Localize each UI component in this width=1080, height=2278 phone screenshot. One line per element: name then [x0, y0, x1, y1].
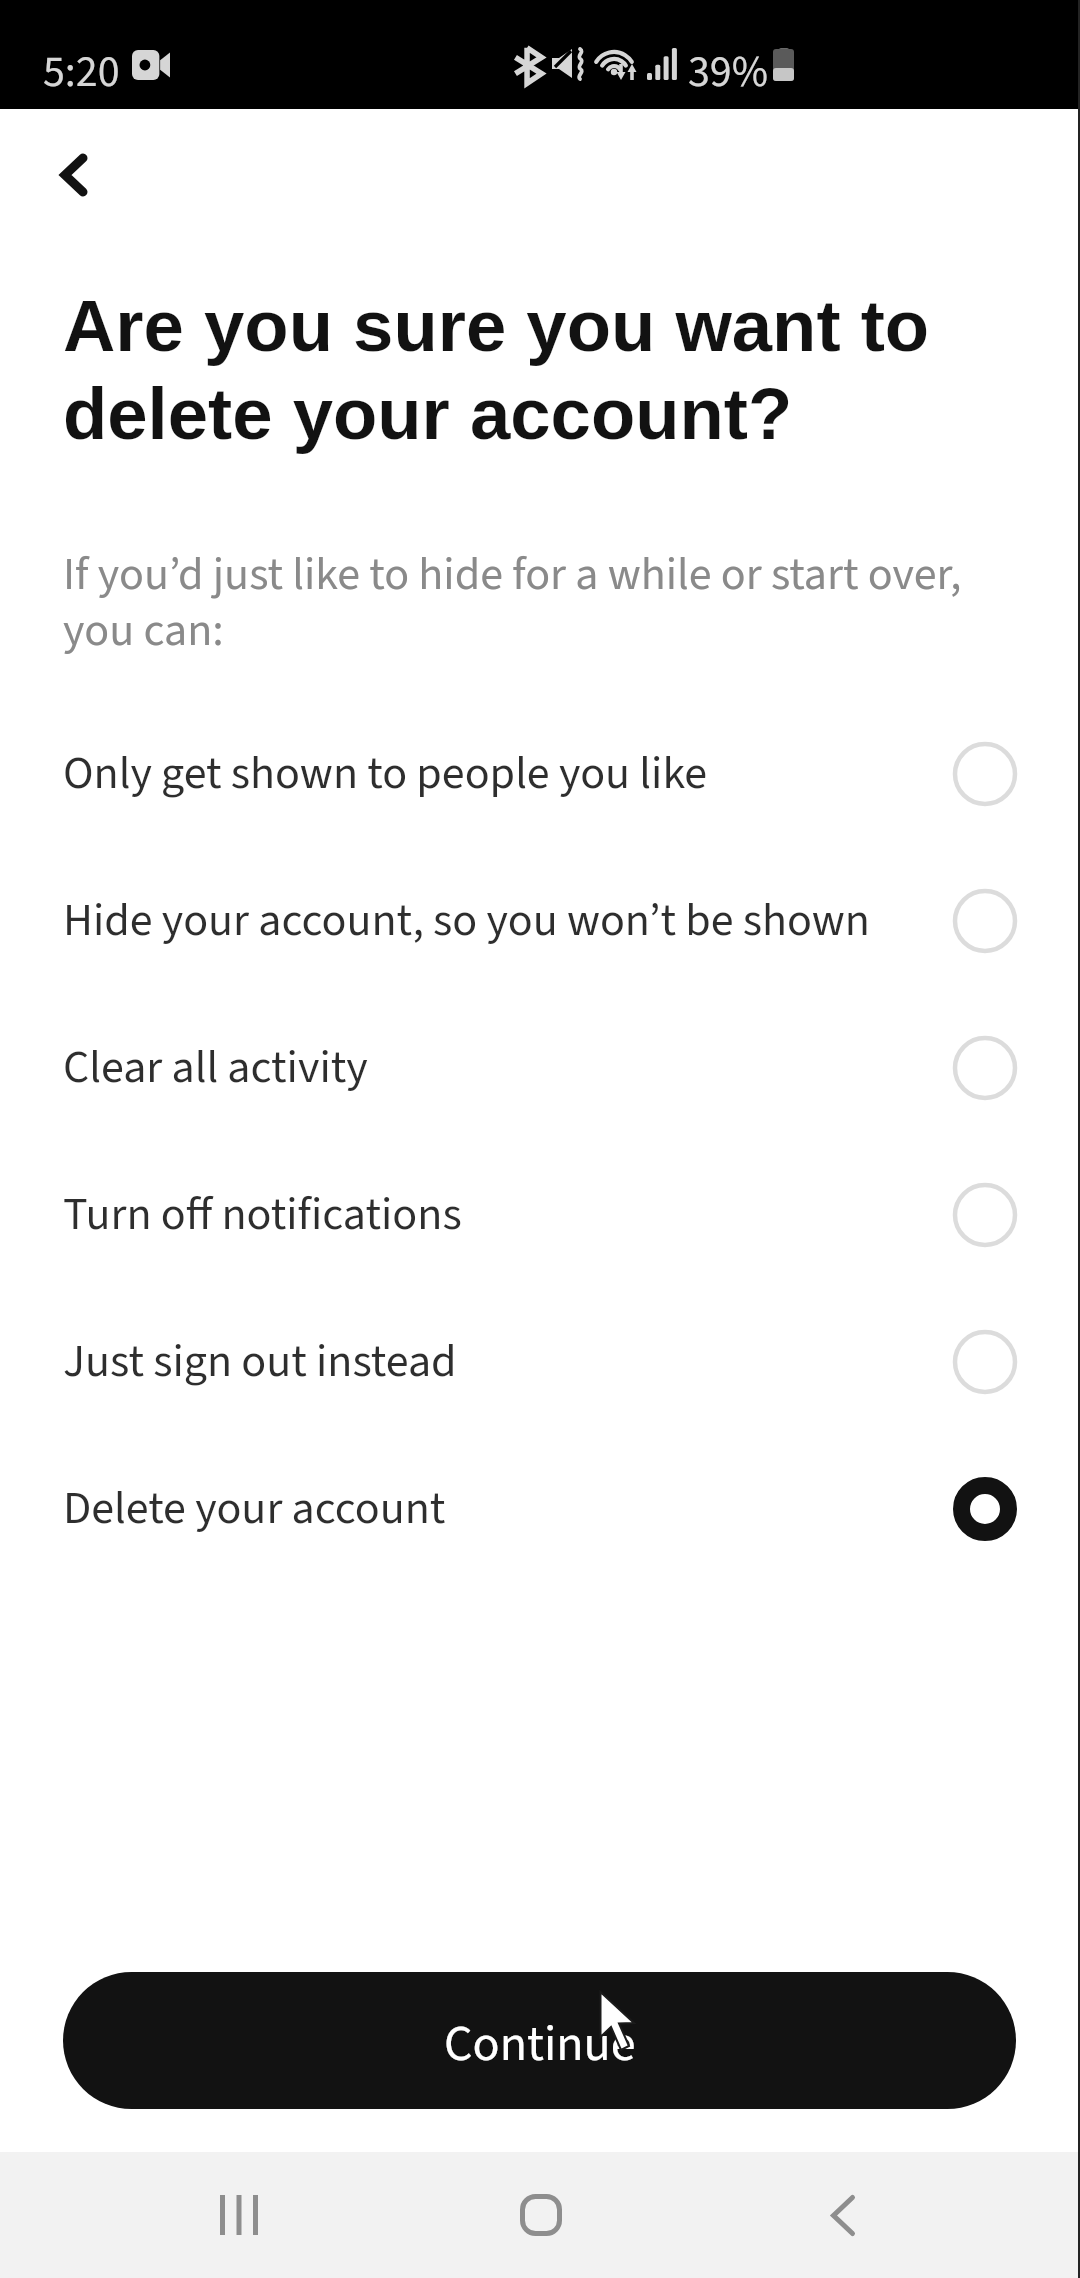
button[interactable]: Recent apps: [179, 2152, 299, 2278]
staticText: Clear all activity: [63, 1035, 951, 1101]
button[interactable]: Turn off notifications: [0, 1141, 1080, 1289]
staticText: Are you sure you want to delete your acc…: [63, 285, 953, 455]
button[interactable]: Hide your account, so you won’t be shown: [0, 847, 1080, 995]
button[interactable]: Delete your account: [0, 1435, 1080, 1583]
staticText: Delete your account: [63, 1476, 951, 1542]
button[interactable]: Home: [481, 2152, 601, 2278]
button[interactable]: Only get shown to people you like: [0, 700, 1080, 848]
staticText: 5:20: [43, 41, 120, 104]
button[interactable]: Continue: [63, 1972, 1016, 2109]
button[interactable]: Back: [783, 2152, 903, 2278]
staticText: Only get shown to people you like: [63, 741, 951, 807]
staticText: 39%: [688, 41, 768, 104]
staticText: Just sign out instead: [63, 1329, 951, 1395]
button[interactable]: Just sign out instead: [0, 1288, 1080, 1436]
staticText: Hide your account, so you won’t be shown: [63, 888, 951, 954]
button[interactable]: Back: [36, 137, 112, 213]
staticText: Turn off notifications: [63, 1182, 951, 1248]
button[interactable]: Clear all activity: [0, 994, 1080, 1142]
staticText: Continue: [444, 2009, 636, 2080]
staticText: If you’d just like to hide for a while o…: [63, 542, 975, 664]
